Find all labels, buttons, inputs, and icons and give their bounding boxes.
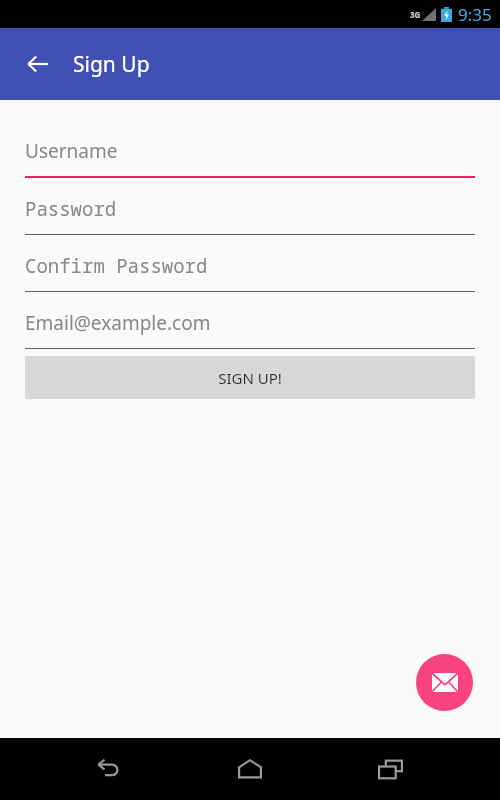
- button[interactable]: Back: [77, 738, 141, 800]
- staticText: 9:35: [458, 3, 492, 26]
- button[interactable]: Username: [25, 126, 475, 183]
- staticText: Confirm Password: [25, 253, 208, 279]
- staticText: Email@example.com: [25, 310, 211, 336]
- button[interactable]: Back: [20, 46, 56, 82]
- button[interactable]: Password: [25, 183, 475, 240]
- button[interactable]: SIGN UP!: [25, 356, 475, 399]
- button[interactable]: Home: [218, 738, 282, 800]
- staticText: SIGN UP!: [218, 368, 282, 388]
- staticText: 3G: [410, 9, 421, 20]
- button[interactable]: Recent apps: [359, 738, 423, 800]
- button[interactable]: Confirm Password: [25, 240, 475, 297]
- button[interactable]: Email@example.com: [25, 297, 475, 354]
- staticText: Sign Up: [73, 50, 150, 79]
- staticText: Password: [25, 196, 117, 222]
- button[interactable]: Send message: [416, 654, 473, 711]
- staticText: Username: [25, 138, 118, 164]
